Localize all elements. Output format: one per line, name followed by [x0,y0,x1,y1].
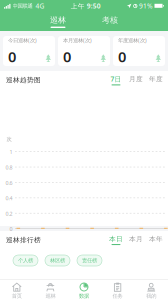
button[interactable]: 任务 [101,280,134,300]
button[interactable]: 考核 [94,12,126,31]
staticText: 月度 [129,75,143,83]
staticText: 0.2 [5,210,12,217]
staticText: 01.08 [59,230,72,238]
button[interactable]: 本月 [128,234,144,246]
staticText: 责任榜 [82,257,97,264]
staticText: 01.09 [84,230,97,238]
staticText: 01.11 [133,230,146,238]
staticText: 考核 [102,15,118,25]
staticText: 本日 [109,235,123,243]
button[interactable]: 巡林 [34,280,67,300]
staticText: 本月巡林(次) [63,37,92,44]
staticText: 数据 [79,293,89,299]
button[interactable]: 林区榜 [45,255,70,266]
staticText: 本年 [149,235,163,243]
button[interactable]: 年度 [148,74,164,86]
staticText: 0 [118,47,126,66]
staticText: 01.12 [158,230,168,238]
staticText: 0 [63,47,71,66]
staticText: 本月 [129,235,143,243]
staticText: 7日 [110,75,121,83]
staticText: 01.10 [109,230,122,238]
staticText: 0.6 [5,179,12,186]
button[interactable]: 数据 [67,280,101,300]
button[interactable]: 本日 [108,234,124,246]
staticText: 巡林 [50,15,66,25]
staticText: 巡林排行榜 [6,236,41,244]
staticText: 首页 [12,293,22,299]
staticText: 1 [9,148,12,156]
button[interactable]: 7日 [108,74,124,86]
staticText: 01.06 [10,230,23,238]
staticText: 林区榜 [50,257,65,264]
staticText: 次 [6,136,11,143]
staticText: 今日巡林(次) [8,37,37,44]
staticText: 0.4 [5,195,12,202]
staticText: 4G [35,2,44,10]
staticText: 0 [9,225,12,233]
staticText: 年度 [149,75,163,83]
button[interactable]: 月度 [128,74,144,86]
staticText: 上午 9:50 [71,2,101,10]
button[interactable]: 我的 [134,280,168,300]
staticText: 年度巡林(次) [118,37,147,44]
button[interactable]: 责任榜 [77,255,102,266]
staticText: 0 [8,47,16,66]
staticText: 我的 [146,293,156,299]
staticText: 0.8 [5,164,12,171]
button[interactable]: 本年 [148,234,164,246]
button[interactable]: 巡林 [42,12,74,31]
button[interactable]: 首页 [0,280,34,300]
staticText: 个人榜 [18,257,33,264]
staticText: 中国联通 [12,3,32,9]
staticText: 巡林 [45,293,55,299]
button[interactable]: 个人榜 [13,255,38,266]
staticText: 巡林趋势图 [6,76,41,84]
staticText: 01.07 [35,230,48,238]
staticText: 91% [139,2,153,10]
staticText: 任务 [113,293,123,299]
